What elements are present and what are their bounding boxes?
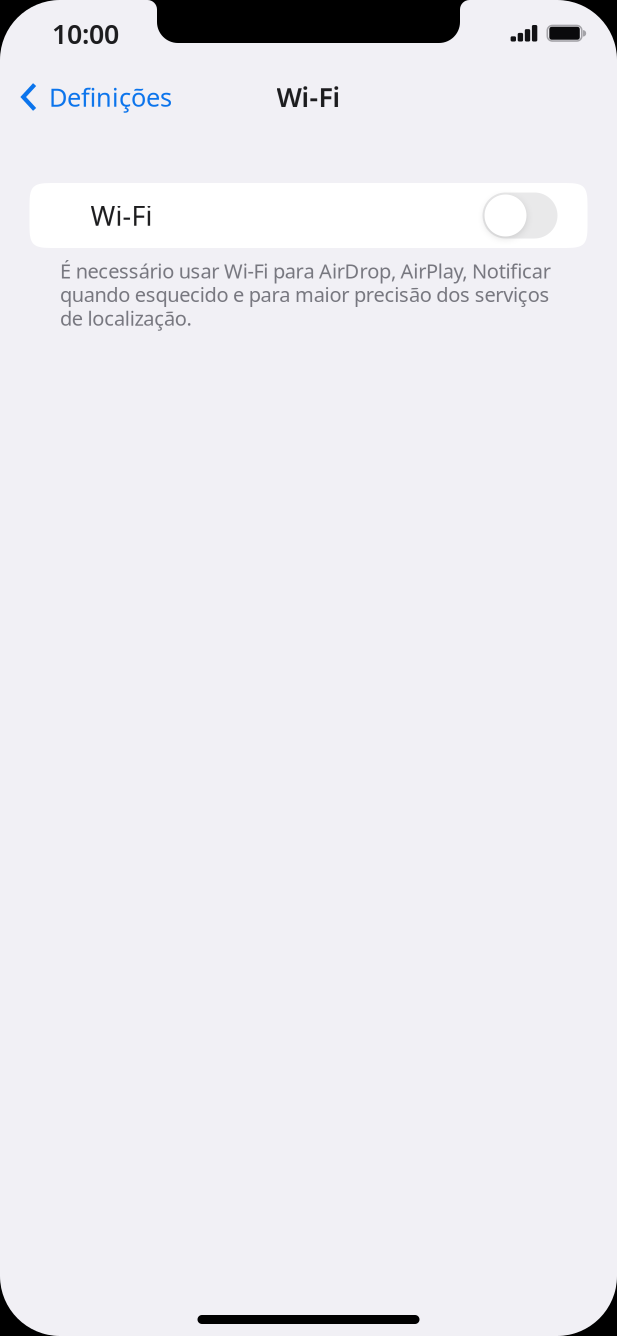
staticText: 10:00 (52, 16, 119, 51)
staticText: Wi-Fi (90, 198, 152, 233)
button[interactable]: Definições (0, 71, 184, 123)
staticText: Definições (49, 80, 172, 114)
button[interactable]: Wi-Fi, desligado (482, 192, 557, 238)
staticText: Wi-Fi (276, 79, 340, 115)
staticText: É necessário usar Wi-Fi para AirDrop, Ai… (60, 259, 551, 330)
button[interactable]: Wi-Fi (29, 183, 587, 248)
